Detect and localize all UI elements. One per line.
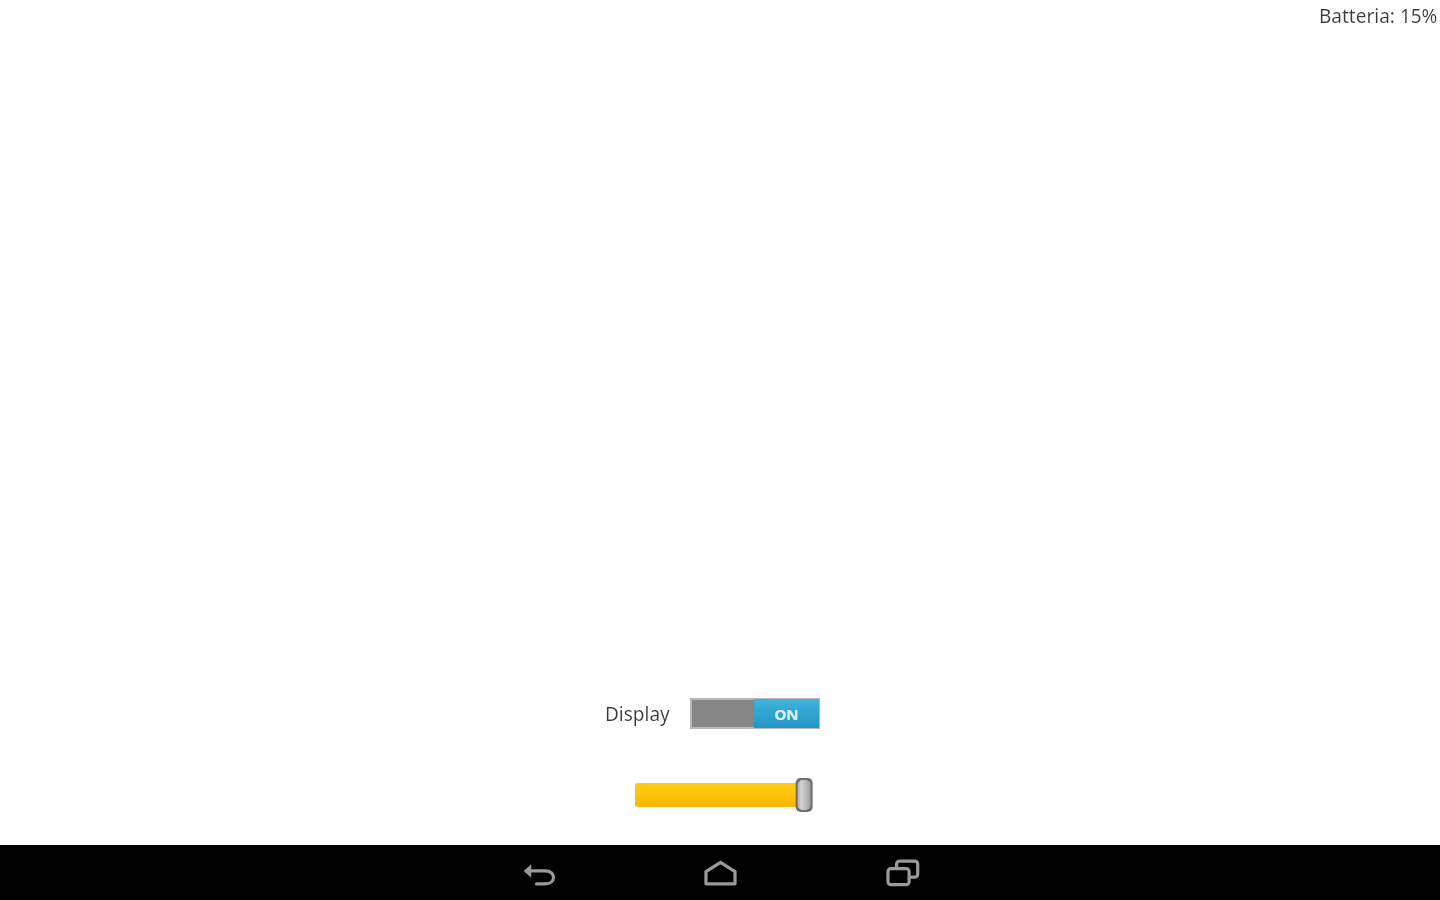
button[interactable]: Display on/off toggle	[691, 699, 819, 728]
button[interactable]: Back	[510, 845, 570, 900]
staticText: ON	[774, 704, 799, 724]
staticText: Display	[605, 701, 670, 727]
button[interactable]: Home	[690, 845, 750, 900]
staticText: Batteria: 15%	[1319, 3, 1438, 29]
button[interactable]: Recent apps	[873, 845, 933, 900]
button[interactable]: Brightness slider	[635, 777, 821, 813]
